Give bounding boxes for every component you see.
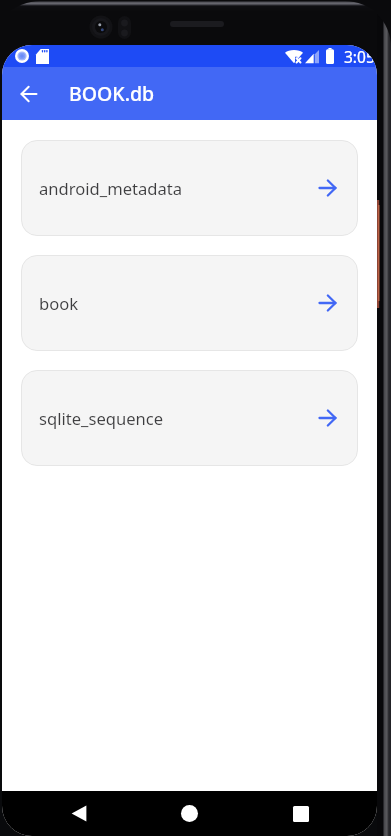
staticText: BOOK.db xyxy=(69,80,155,107)
button[interactable]: Recents xyxy=(277,791,325,836)
button[interactable]: android_metadata xyxy=(21,140,358,236)
staticText: sqlite_sequence xyxy=(39,407,164,430)
staticText: book xyxy=(39,292,79,315)
staticText: android_metadata xyxy=(39,177,183,200)
button[interactable]: Back xyxy=(55,791,103,836)
staticText: 3:05 xyxy=(344,46,375,67)
button[interactable]: sqlite_sequence xyxy=(21,370,358,466)
button[interactable]: book xyxy=(21,255,358,351)
button[interactable]: Home xyxy=(165,791,213,836)
button[interactable]: Back xyxy=(8,73,50,115)
